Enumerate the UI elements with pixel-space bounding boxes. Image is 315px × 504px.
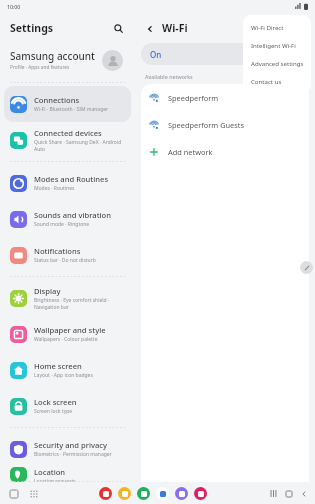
staticText: Profile · Apps and features: [10, 64, 70, 71]
button[interactable]: Wi-Fi Direct: [243, 18, 311, 36]
button[interactable]: Back: [141, 20, 158, 37]
button[interactable]: Search: [109, 19, 127, 37]
staticText: Contact us: [251, 77, 282, 85]
button[interactable]: Samsung account: [4, 43, 131, 77]
staticText: Modes and Routines: [34, 174, 109, 184]
button[interactable]: App: [118, 487, 131, 500]
button[interactable]: Apps: [27, 487, 40, 500]
staticText: Advanced settings: [251, 59, 304, 67]
staticText: Location: [34, 467, 66, 477]
staticText: 10:00: [7, 3, 21, 10]
button[interactable]: Notifications: [4, 237, 131, 273]
staticText: Location requests: [34, 478, 76, 482]
staticText: Notifications: [34, 246, 81, 256]
staticText: Display: [34, 286, 61, 296]
staticText: Status bar · Do not disturb: [34, 257, 96, 264]
button[interactable]: App: [99, 487, 112, 500]
staticText: Wallpaper and style: [34, 325, 106, 335]
button[interactable]: Edge panel: [300, 261, 313, 274]
staticText: On: [150, 49, 162, 60]
button[interactable]: Display: [4, 280, 131, 316]
staticText: Modes · Routines: [34, 185, 75, 192]
button[interactable]: Advanced settings: [243, 54, 311, 72]
button[interactable]: Speedperform: [141, 84, 309, 111]
staticText: Wallpapers · Colour palette: [34, 336, 98, 343]
staticText: Security and privacy: [34, 440, 108, 450]
button[interactable]: Add network: [141, 138, 309, 165]
button[interactable]: Home screen: [4, 352, 131, 388]
button[interactable]: Security and privacy: [4, 431, 131, 467]
button[interactable]: Wallpaper and style: [4, 316, 131, 352]
staticText: Lock screen: [34, 397, 77, 407]
button[interactable]: Recent apps tray: [7, 487, 20, 500]
staticText: Connections: [34, 95, 80, 105]
button[interactable]: Contact us: [243, 72, 311, 90]
staticText: Samsung account: [10, 49, 95, 63]
staticText: Speedperform: [168, 93, 219, 103]
button[interactable]: App: [137, 487, 150, 500]
staticText: Screen lock type: [34, 408, 73, 415]
button[interactable]: Speedperform Guests: [141, 111, 309, 138]
button[interactable]: Modes and Routines: [4, 165, 131, 201]
staticText: Wi-Fi: [162, 21, 188, 35]
staticText: Add network: [168, 147, 213, 157]
button[interactable]: Back: [296, 486, 311, 501]
button[interactable]: Home: [281, 486, 296, 501]
staticText: Sound mode · Ringtone: [34, 221, 90, 228]
staticText: Wi-Fi Direct: [251, 23, 284, 31]
button[interactable]: Sounds and vibration: [4, 201, 131, 237]
staticText: Available networks: [145, 73, 193, 80]
staticText: Biometrics · Permission manager: [34, 451, 112, 458]
staticText: Home screen: [34, 361, 82, 371]
staticText: Wi-Fi · Bluetooth · SIM manager: [34, 106, 109, 113]
staticText: Speedperform Guests: [168, 120, 245, 130]
staticText: Connected devices: [34, 128, 102, 138]
button[interactable]: Lock screen: [4, 388, 131, 424]
button[interactable]: Intelligent Wi-Fi: [243, 36, 311, 54]
button[interactable]: Connected devices: [4, 122, 131, 158]
staticText: Sounds and vibration: [34, 210, 112, 220]
button[interactable]: On: [141, 43, 309, 65]
staticText: Settings: [10, 21, 54, 35]
button[interactable]: App: [194, 487, 207, 500]
staticText: Quick Share · Samsung DeX · Android Auto: [34, 139, 125, 152]
button[interactable]: App: [175, 487, 188, 500]
button[interactable]: Connections: [4, 86, 131, 122]
button[interactable]: Location: [4, 467, 131, 482]
button[interactable]: Recents: [266, 486, 281, 501]
staticText: Intelligent Wi-Fi: [251, 41, 296, 49]
button[interactable]: App: [156, 487, 169, 500]
staticText: Layout · App icon badges: [34, 372, 93, 379]
staticText: Brightness · Eye comfort shield · Naviga…: [34, 297, 125, 310]
